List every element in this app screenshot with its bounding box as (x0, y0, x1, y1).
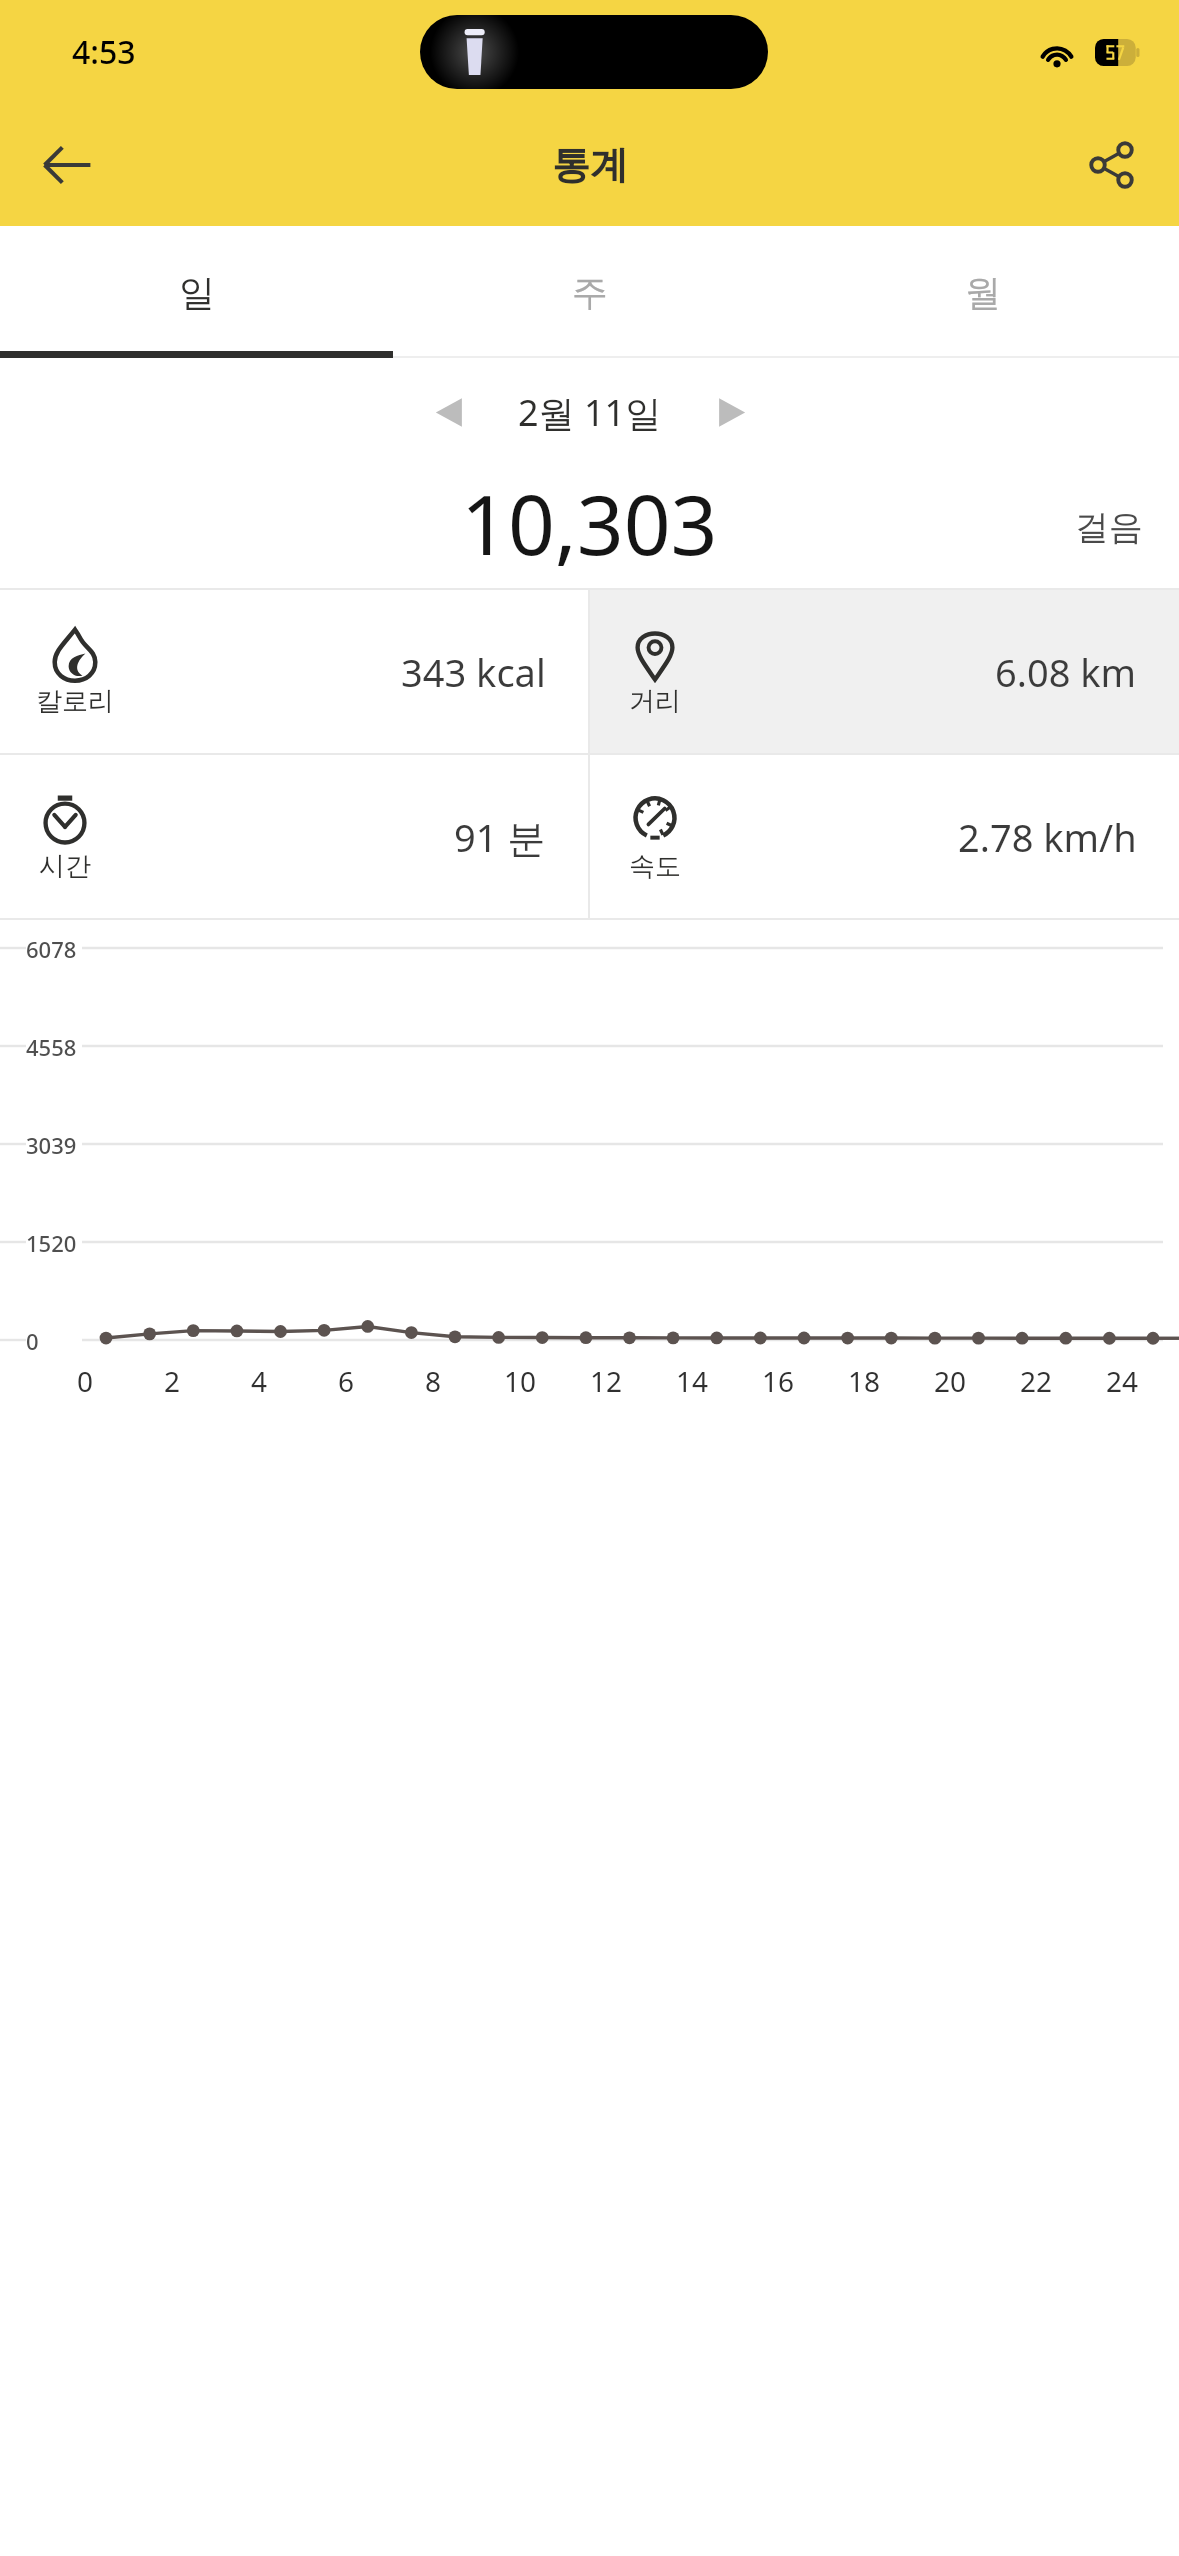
staticText: 1520 (26, 1228, 77, 1258)
button[interactable]: Back (24, 122, 110, 208)
staticText: 4558 (26, 1032, 77, 1062)
staticText: 0 (77, 1362, 94, 1400)
staticText: 20 (934, 1362, 967, 1400)
staticText: 8 (425, 1362, 442, 1400)
staticText: 0 (26, 1326, 39, 1356)
staticText: 주 (572, 270, 608, 315)
staticText: 18 (848, 1362, 881, 1400)
staticText: 343 kcal (401, 646, 546, 698)
staticText: 6.08 km (995, 646, 1137, 698)
button[interactable]: Share (1069, 122, 1155, 208)
button[interactable]: 속도 (590, 755, 1179, 918)
staticText: 24 (1106, 1362, 1139, 1400)
staticText: 월 (965, 270, 1001, 315)
staticText: 14 (676, 1362, 709, 1400)
staticText: 속도 (629, 850, 681, 883)
staticText: 22 (1020, 1362, 1053, 1400)
staticText: 일 (179, 270, 215, 315)
staticText: 10,303 (461, 467, 718, 579)
staticText: 3039 (26, 1130, 77, 1160)
staticText: 12 (590, 1362, 623, 1400)
staticText: 91 분 (454, 811, 546, 863)
staticText: 시간 (39, 850, 91, 883)
button[interactable]: 시간 (0, 755, 588, 918)
button[interactable]: Next day (692, 373, 770, 451)
button[interactable]: 월 (786, 226, 1179, 358)
staticText: 통계 (552, 141, 628, 189)
staticText: 거리 (629, 685, 681, 718)
button[interactable]: 일 (0, 226, 393, 358)
staticText: 2월 11일 (518, 388, 662, 437)
button[interactable]: 칼로리 (0, 590, 588, 753)
staticText: 2 (164, 1362, 181, 1400)
staticText: 2.78 km/h (958, 811, 1137, 863)
button[interactable]: 주 (393, 226, 786, 358)
staticText: 4:53 (72, 30, 136, 74)
staticText: 10 (504, 1362, 537, 1400)
staticText: 4 (251, 1362, 268, 1400)
button[interactable]: 거리 (590, 590, 1179, 753)
staticText: 16 (762, 1362, 795, 1400)
staticText: 칼로리 (36, 685, 114, 718)
button[interactable]: Previous day (410, 373, 488, 451)
staticText: 6 (338, 1362, 355, 1400)
staticText: 걸음 (1075, 506, 1143, 549)
staticText: 6078 (26, 934, 77, 964)
